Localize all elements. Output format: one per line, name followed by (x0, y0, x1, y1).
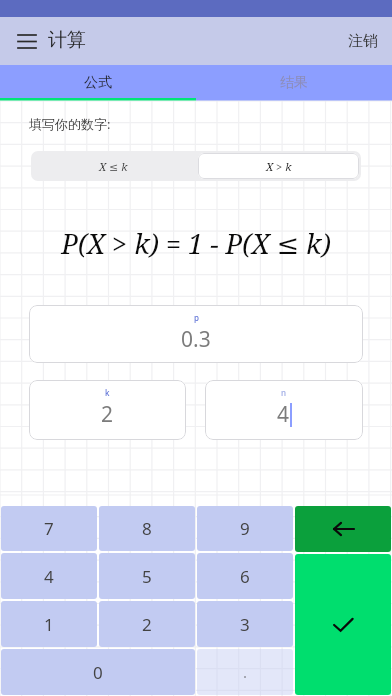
staticText: 9 (240, 517, 250, 540)
staticText: 6 (240, 565, 250, 588)
button[interactable]: 结果 (196, 65, 392, 101)
staticText: 3 (240, 613, 250, 636)
button[interactable]: 5 (99, 553, 195, 599)
button[interactable]: 2 (99, 601, 195, 647)
button[interactable]: Open navigation menu (10, 24, 44, 58)
button[interactable]: 1 (1, 601, 97, 647)
staticText: 2 (142, 613, 152, 636)
button[interactable]: X ≤ k (31, 151, 196, 181)
button[interactable]: 4 (1, 553, 97, 599)
staticText: 7 (44, 517, 54, 540)
button[interactable]: Backspace (295, 506, 391, 552)
staticText: 填写你的数字: (29, 115, 111, 133)
staticText: n (281, 387, 287, 398)
button[interactable]: 3 (197, 601, 293, 647)
button[interactable]: X > k (198, 153, 359, 179)
staticText: 5 (142, 565, 152, 588)
staticText: X ≤ k (99, 159, 128, 174)
button[interactable]: 0 (1, 649, 195, 695)
staticText: 0.3 (181, 325, 211, 354)
staticText: 计算 (48, 28, 86, 52)
staticText: 8 (142, 517, 152, 540)
button[interactable]: 8 (99, 506, 195, 551)
staticText: 2 (101, 400, 114, 429)
button[interactable]: n (205, 380, 363, 440)
staticText: 4 (277, 400, 290, 429)
staticText: P(X > k) = 1 − P(X ≤ k) (0, 225, 392, 262)
button[interactable]: 注销 (334, 22, 392, 61)
button[interactable]: 7 (1, 506, 97, 551)
button[interactable]: Confirm (295, 554, 391, 695)
button[interactable]: 6 (197, 553, 293, 599)
staticText: 注销 (348, 32, 378, 51)
button[interactable]: p (29, 305, 363, 363)
staticText: 1 (44, 613, 54, 636)
staticText: . (243, 662, 248, 682)
staticText: 结果 (280, 74, 308, 92)
staticText: 0 (93, 661, 103, 684)
staticText: p (194, 312, 199, 323)
button[interactable]: 9 (197, 506, 293, 551)
button[interactable]: k (29, 380, 186, 440)
button[interactable]: 公式 (0, 65, 196, 101)
staticText: 4 (44, 565, 54, 588)
staticText: k (105, 387, 110, 398)
staticText: X > k (266, 159, 292, 174)
staticText: 公式 (84, 74, 112, 92)
